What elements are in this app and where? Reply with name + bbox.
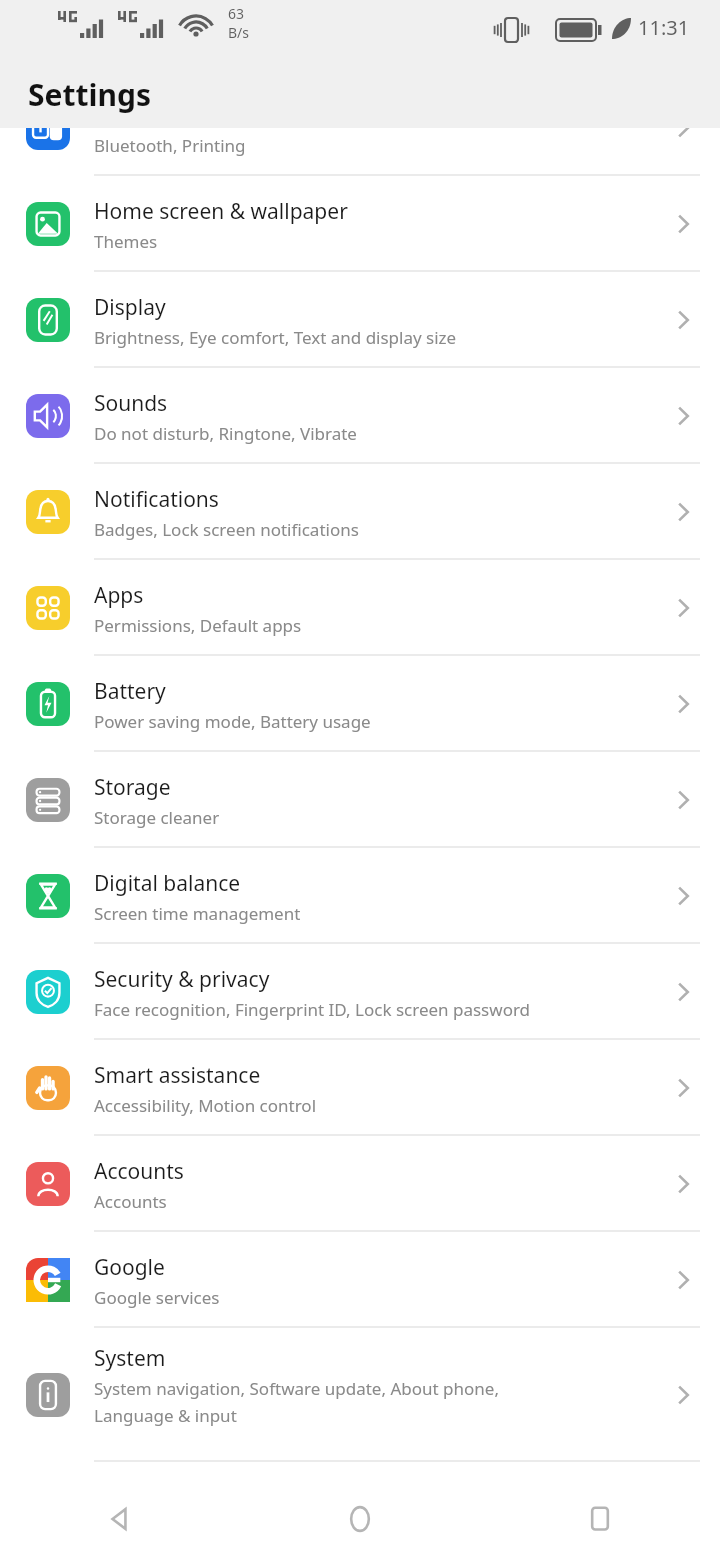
- button[interactable]: Smart assistance: [0, 1040, 720, 1136]
- button[interactable]: Digital balance: [0, 848, 720, 944]
- staticText: 63: [228, 4, 245, 23]
- button[interactable]: Home: [240, 1478, 480, 1560]
- button[interactable]: System: [0, 1328, 720, 1462]
- staticText: System navigation, Software update, Abou…: [94, 1377, 499, 1427]
- staticText: Do not disturb, Ringtone, Vibrate: [94, 422, 357, 445]
- staticText: Storage: [94, 773, 171, 802]
- button[interactable]: Recent apps: [480, 1478, 720, 1560]
- button[interactable]: Google: [0, 1232, 720, 1328]
- staticText: Battery: [94, 677, 166, 706]
- button[interactable]: Battery: [0, 656, 720, 752]
- staticText: B/s: [228, 23, 250, 42]
- staticText: Security & privacy: [94, 965, 270, 994]
- staticText: Permissions, Default apps: [94, 614, 302, 637]
- button[interactable]: Storage: [0, 752, 720, 848]
- button[interactable]: Sounds: [0, 368, 720, 464]
- staticText: Screen time management: [94, 902, 301, 925]
- staticText: Accessibility, Motion control: [94, 1094, 317, 1117]
- button[interactable]: Back: [0, 1478, 240, 1560]
- staticText: Storage cleaner: [94, 806, 220, 829]
- button[interactable]: Home screen & wallpaper: [0, 176, 720, 272]
- staticText: Home screen & wallpaper: [94, 197, 348, 226]
- staticText: Accounts: [94, 1190, 167, 1213]
- staticText: Themes: [94, 230, 158, 253]
- staticText: Google: [94, 1253, 165, 1282]
- staticText: Google services: [94, 1286, 220, 1309]
- staticText: Apps: [94, 581, 144, 610]
- button[interactable]: Security & privacy: [0, 944, 720, 1040]
- staticText: Smart assistance: [94, 1061, 261, 1090]
- staticText: Brightness, Eye comfort, Text and displa…: [94, 326, 457, 349]
- staticText: Badges, Lock screen notifications: [94, 518, 359, 541]
- staticText: System: [94, 1344, 166, 1373]
- staticText: Settings: [28, 74, 151, 115]
- staticText: Bluetooth, Printing: [94, 134, 246, 157]
- staticText: Power saving mode, Battery usage: [94, 710, 371, 733]
- button[interactable]: Device connectivity: [0, 80, 720, 176]
- staticText: Device connectivity: [94, 101, 283, 130]
- staticText: Accounts: [94, 1157, 184, 1186]
- button[interactable]: Accounts: [0, 1136, 720, 1232]
- staticText: Display: [94, 293, 166, 322]
- staticText: Notifications: [94, 485, 219, 514]
- staticText: Sounds: [94, 389, 168, 418]
- staticText: 11:31: [638, 14, 690, 41]
- button[interactable]: Notifications: [0, 464, 720, 560]
- button[interactable]: Apps: [0, 560, 720, 656]
- staticText: Face recognition, Fingerprint ID, Lock s…: [94, 998, 531, 1021]
- staticText: Digital balance: [94, 869, 241, 898]
- button[interactable]: Display: [0, 272, 720, 368]
